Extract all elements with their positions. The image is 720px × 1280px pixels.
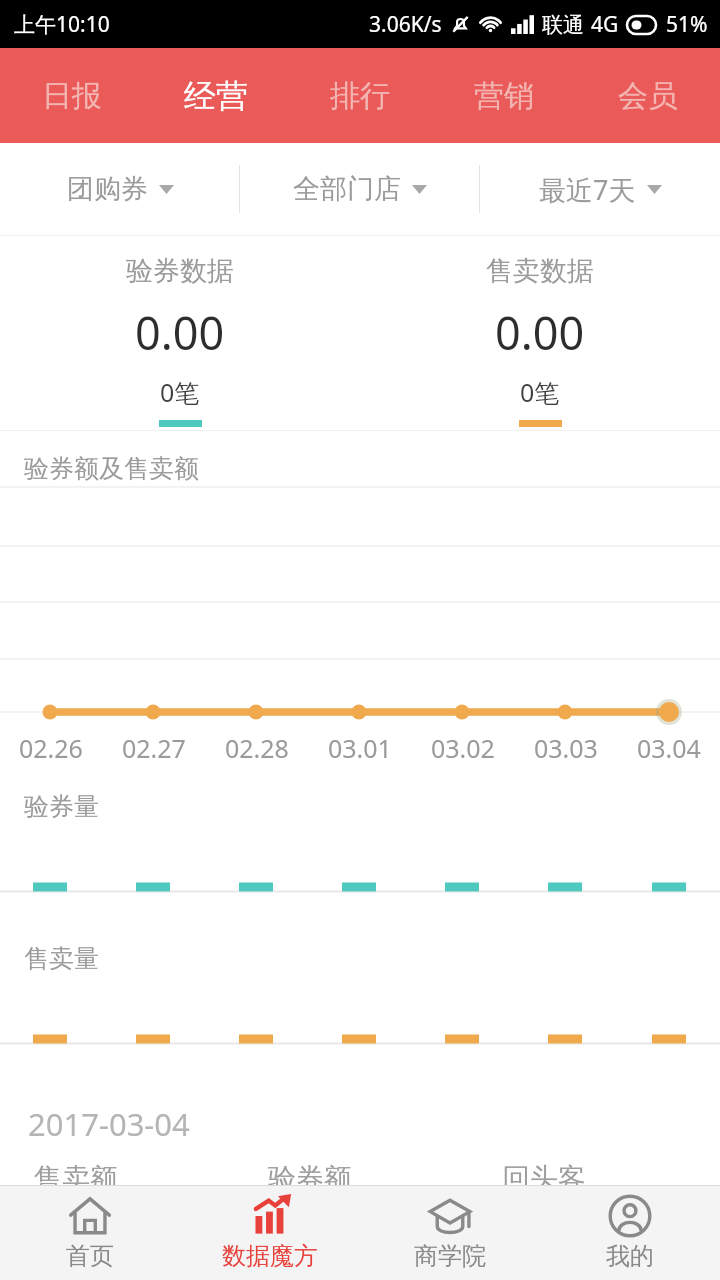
button[interactable]: 售卖数据 — [360, 236, 720, 430]
staticText: 0.00 — [135, 302, 225, 363]
button[interactable]: 首页 — [0, 1186, 180, 1280]
button[interactable]: 会员 — [576, 48, 720, 143]
staticText: 0笔 — [160, 375, 200, 409]
button[interactable]: 排行 — [288, 48, 432, 143]
button[interactable]: 数据魔方 — [180, 1186, 360, 1280]
button[interactable]: 日报 — [0, 48, 144, 143]
staticText: 03.01 — [328, 731, 392, 765]
staticText: 营销 — [474, 77, 534, 115]
staticText: 验券数据 — [126, 254, 234, 288]
staticText: 2017-03-04 — [28, 1103, 190, 1145]
staticText: 最近7天 — [539, 171, 636, 208]
staticText: 02.26 — [19, 731, 83, 765]
staticText: 售卖额 — [34, 1161, 118, 1196]
staticText: 日报 — [42, 77, 102, 115]
button[interactable]: 经营 — [144, 48, 288, 143]
staticText: 上午10:10 — [14, 10, 110, 39]
staticText: 售卖量 — [24, 943, 99, 974]
button[interactable]: 验券数据 — [0, 236, 360, 430]
staticText: 03.02 — [431, 731, 495, 765]
staticText: 03.03 — [534, 731, 598, 765]
staticText: 0笔 — [520, 375, 560, 409]
button[interactable]: 最近7天 — [480, 143, 720, 235]
staticText: 验券额 — [268, 1161, 352, 1196]
staticText: 0.00 — [495, 302, 585, 363]
button[interactable]: 团购券 — [0, 143, 240, 235]
staticText: 联通 — [542, 12, 584, 38]
staticText: 3.06K/s — [369, 10, 442, 39]
staticText: 我的 — [606, 1241, 654, 1271]
staticText: 验券额及售卖额 — [24, 453, 199, 484]
staticText: 02.27 — [122, 731, 186, 765]
staticText: 51% — [666, 10, 708, 39]
staticText: 验券量 — [24, 791, 99, 822]
staticText: 经营 — [184, 76, 248, 116]
staticText: 全部门店 — [293, 172, 401, 206]
staticText: 03.04 — [637, 731, 701, 765]
staticText: 数据魔方 — [222, 1241, 318, 1271]
staticText: 首页 — [66, 1241, 114, 1271]
staticText: 02.28 — [225, 731, 289, 765]
staticText: 会员 — [618, 77, 678, 115]
staticText: 4G — [591, 10, 619, 39]
staticText: 售卖数据 — [486, 254, 594, 288]
button[interactable]: 商学院 — [360, 1186, 540, 1280]
staticText: 团购券 — [67, 172, 148, 206]
staticText: 排行 — [330, 77, 390, 115]
button[interactable]: 营销 — [432, 48, 576, 143]
button[interactable]: 我的 — [540, 1186, 720, 1280]
staticText: 回头客 — [502, 1161, 586, 1196]
button[interactable]: 全部门店 — [240, 143, 480, 235]
staticText: 商学院 — [414, 1241, 486, 1271]
